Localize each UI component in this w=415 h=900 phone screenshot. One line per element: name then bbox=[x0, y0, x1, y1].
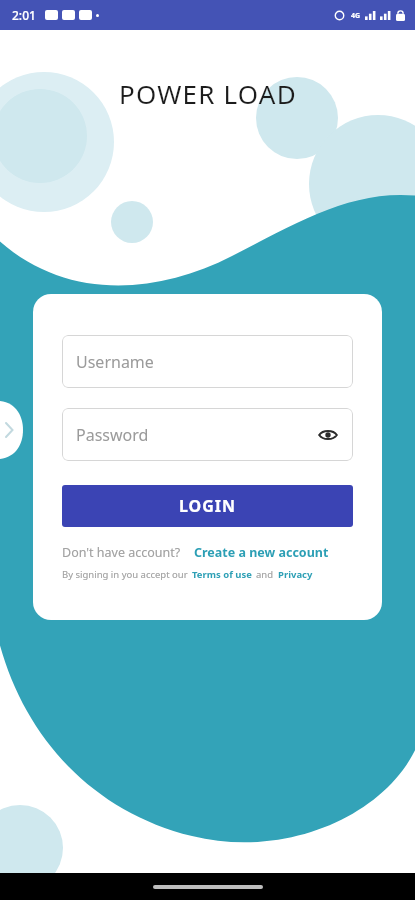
button[interactable]: Terms of use bbox=[192, 568, 252, 581]
staticText: POWER LOAD bbox=[119, 76, 297, 111]
staticText: Password bbox=[76, 424, 149, 446]
staticText: Terms of use bbox=[192, 568, 252, 581]
staticText: 2:01 bbox=[12, 7, 36, 23]
button[interactable]: Show password bbox=[312, 419, 344, 451]
staticText: LOGIN bbox=[179, 495, 237, 517]
button[interactable]: Password bbox=[62, 408, 353, 461]
button[interactable]: Username bbox=[62, 335, 353, 388]
staticText: and bbox=[256, 568, 274, 581]
button[interactable]: Create a new account bbox=[194, 544, 329, 561]
staticText: Create a new account bbox=[194, 544, 329, 561]
staticText: By signing in you accept our bbox=[62, 568, 188, 581]
button[interactable]: Privacy bbox=[278, 568, 313, 581]
button[interactable]: LOGIN bbox=[62, 485, 353, 527]
button[interactable]: Open side panel bbox=[0, 401, 23, 459]
staticText: Username bbox=[76, 351, 154, 373]
staticText: 4G bbox=[351, 11, 361, 21]
staticText: Don't have account? bbox=[62, 544, 181, 561]
staticText: Privacy bbox=[278, 568, 313, 581]
